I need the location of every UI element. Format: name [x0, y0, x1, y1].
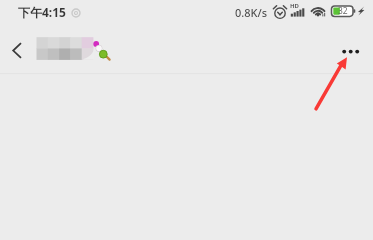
staticText: 0.8K/s	[235, 5, 268, 20]
button[interactable]: Back	[0, 30, 40, 70]
button[interactable]: Chat title	[36, 33, 110, 63]
staticText: 32	[338, 5, 348, 17]
staticText: HD	[290, 2, 299, 10]
staticText: 下午4:15	[18, 4, 66, 20]
button[interactable]: More options	[330, 31, 370, 71]
